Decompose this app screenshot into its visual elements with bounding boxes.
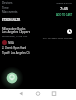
- button[interactable]: Back: [14, 89, 29, 100]
- staticText: 2. Derek Ryan Hard: [2, 46, 27, 50]
- button[interactable]: Recent apps: [47, 89, 62, 100]
- staticText: TALL. ON GREAT SEATS. EXPLORE: [40, 37, 75, 40]
- staticText: Time: [2, 6, 9, 10]
- staticText: NBA: [8, 41, 14, 45]
- staticText: Devices: [2, 1, 13, 5]
- staticText: Tipoff: Los Angeles Cli: [2, 51, 30, 55]
- staticText: ETXDN.NLZR: [2, 18, 21, 22]
- staticText: Milwaukee Bucks: [2, 27, 26, 31]
- staticText: ADD TO CART: [52, 13, 76, 16]
- button[interactable]: Home: [31, 89, 46, 100]
- staticText: ARRIVE 5:51 PM: [52, 2, 76, 5]
- button[interactable]: NBA: [2, 40, 14, 45]
- staticText: 7:45: [52, 6, 76, 11]
- staticText: Los Angeles Clippers: [2, 30, 31, 34]
- button[interactable]: Schedule: [67, 29, 72, 34]
- staticText: Max events: [2, 10, 18, 14]
- staticText: 09/20/2026, 17:30 UTC: [2, 34, 28, 37]
